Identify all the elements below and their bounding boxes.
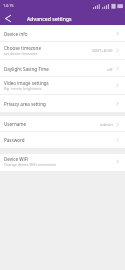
button[interactable]: Device WiFi xyxy=(0,154,125,171)
staticText: Privacy area setting xyxy=(4,101,46,107)
staticText: admin xyxy=(100,121,113,127)
staticText: off xyxy=(107,66,113,72)
staticText: set device timezone xyxy=(4,51,38,56)
staticText: Choose timezone xyxy=(4,45,41,51)
staticText: GMT+8:00 xyxy=(92,47,113,53)
staticText: Device WiFi xyxy=(4,156,29,162)
staticText: Advanced settings xyxy=(27,15,72,22)
staticText: Password xyxy=(4,137,25,143)
staticText: Device info xyxy=(4,31,28,37)
staticText: Username xyxy=(4,121,27,127)
button[interactable]: Daylight Saving Time xyxy=(0,60,125,77)
button[interactable]: Device info xyxy=(0,25,125,42)
staticText: flip, mirror, brightness xyxy=(4,86,42,91)
button[interactable]: Video image settings xyxy=(0,77,125,95)
button[interactable]: Privacy area setting xyxy=(0,95,125,112)
button[interactable]: Username xyxy=(0,116,125,132)
button[interactable]: Back xyxy=(0,11,15,25)
button[interactable]: Choose timezone xyxy=(0,42,125,60)
staticText: 14:15 xyxy=(3,3,14,9)
button[interactable]: Password xyxy=(0,132,125,148)
staticText: Video image settings xyxy=(4,80,49,86)
staticText: Daylight Saving Time xyxy=(4,66,49,72)
staticText: Change device WiFi connection xyxy=(4,162,57,167)
